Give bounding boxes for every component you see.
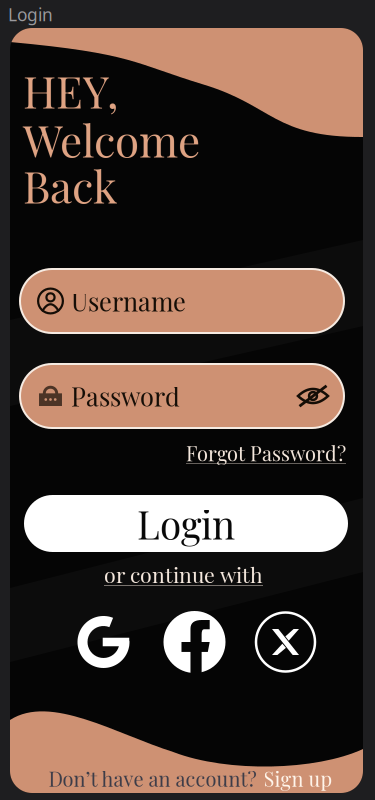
staticText: Don’t have an account? (48, 765, 256, 792)
staticText: Sign up (263, 765, 332, 792)
staticText: HEY, (23, 61, 118, 120)
button[interactable]: Username (20, 269, 344, 333)
button[interactable]: Don’t have an account? (48, 765, 332, 792)
button[interactable]: Forgot Password? (156, 439, 346, 467)
staticText: Password (71, 379, 180, 413)
staticText: or continue with (104, 560, 263, 588)
staticText: Forgot Password? (186, 440, 346, 466)
button[interactable]: or continue with (104, 557, 263, 591)
staticText: Login (137, 498, 235, 549)
button[interactable]: Login (24, 495, 348, 552)
button[interactable]: Continue with Facebook (163, 611, 225, 673)
button[interactable]: Password (20, 364, 344, 428)
button[interactable]: Continue with X (254, 611, 316, 673)
button[interactable]: Continue with Google (72, 611, 134, 673)
staticText: Back (23, 156, 117, 215)
staticText: Login (8, 3, 53, 26)
staticText: Welcome (23, 110, 200, 169)
staticText: Username (71, 284, 186, 318)
